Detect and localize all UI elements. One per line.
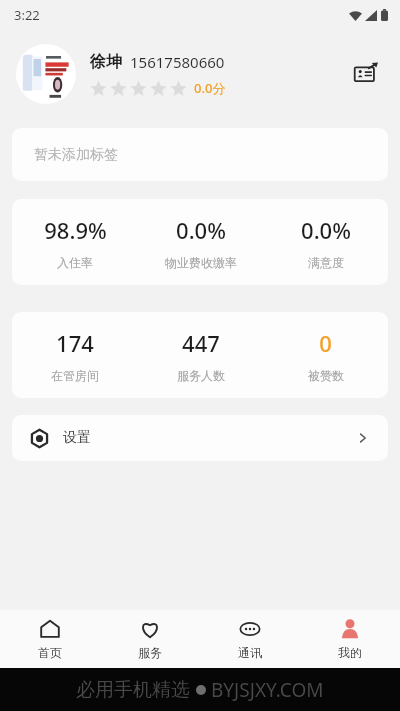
staticText: 入住率 (57, 255, 93, 270)
button[interactable]: 服务 (100, 610, 200, 668)
staticText: 被赞数 (308, 368, 344, 383)
staticText: 174 (56, 328, 94, 358)
staticText: 必用手机精选 (76, 678, 190, 702)
staticText: 徐坤 (90, 52, 122, 72)
button[interactable]: 暂未添加标签 (12, 128, 388, 181)
staticText: 0.0% (301, 215, 351, 245)
staticText: 0 (319, 328, 332, 358)
button[interactable]: 通讯 (200, 610, 300, 668)
button[interactable]: 我的 (300, 610, 400, 668)
staticText: 98.9% (44, 215, 107, 245)
staticText: 设置 (63, 429, 91, 447)
staticText: 0.0% (176, 215, 226, 245)
staticText: 暂未添加标签 (34, 146, 118, 164)
button[interactable]: Profile avatar (16, 44, 76, 104)
staticText: 0.0分 (194, 79, 226, 97)
staticText: 通讯 (238, 645, 262, 660)
button[interactable]: 174 (12, 312, 388, 398)
button[interactable]: 设置 (12, 415, 388, 461)
staticText: 我的 (338, 645, 362, 660)
staticText: 满意度 (308, 255, 344, 270)
button[interactable]: 首页 (0, 610, 100, 668)
staticText: 在管房间 (51, 368, 99, 383)
staticText: 服务 (138, 645, 162, 660)
staticText: 首页 (38, 645, 62, 660)
button[interactable]: Share contact card (346, 54, 386, 94)
button[interactable]: 98.9% (12, 199, 388, 285)
staticText: 447 (182, 328, 220, 358)
staticText: BYJSJXY.COM (211, 677, 324, 703)
staticText: 物业费收缴率 (165, 255, 237, 270)
staticText: 3:22 (14, 6, 40, 24)
staticText: 服务人数 (177, 368, 225, 383)
staticText: 15617580660 (130, 52, 225, 72)
